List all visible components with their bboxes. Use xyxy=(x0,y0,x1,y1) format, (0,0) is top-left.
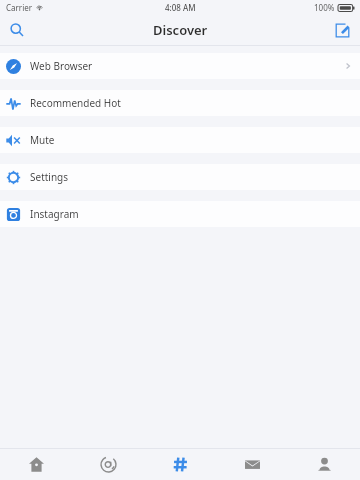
button[interactable]: Search xyxy=(0,15,34,45)
staticText: Web Browser xyxy=(30,59,93,73)
staticText: 4:08 AM xyxy=(165,2,196,13)
staticText: Recommended Hot xyxy=(30,96,121,110)
button[interactable]: Messages xyxy=(216,449,288,480)
button[interactable]: Mute xyxy=(0,127,360,153)
button[interactable]: Web Browser xyxy=(0,53,360,79)
staticText: Carrier xyxy=(6,2,33,13)
button[interactable]: Home xyxy=(0,449,72,480)
staticText: Mute xyxy=(30,133,55,147)
button[interactable]: Recommended Hot xyxy=(0,90,360,116)
button[interactable]: Profile xyxy=(288,449,360,480)
staticText: Discover xyxy=(153,21,208,39)
staticText: 100% xyxy=(314,2,335,13)
button[interactable]: Compose xyxy=(324,15,360,45)
staticText: Instagram xyxy=(30,207,79,221)
button[interactable]: Instagram xyxy=(0,201,360,227)
staticText: Settings xyxy=(30,170,69,184)
button[interactable]: Discover xyxy=(144,449,216,480)
button[interactable]: Settings xyxy=(0,164,360,190)
button[interactable]: Mentions xyxy=(72,449,144,480)
